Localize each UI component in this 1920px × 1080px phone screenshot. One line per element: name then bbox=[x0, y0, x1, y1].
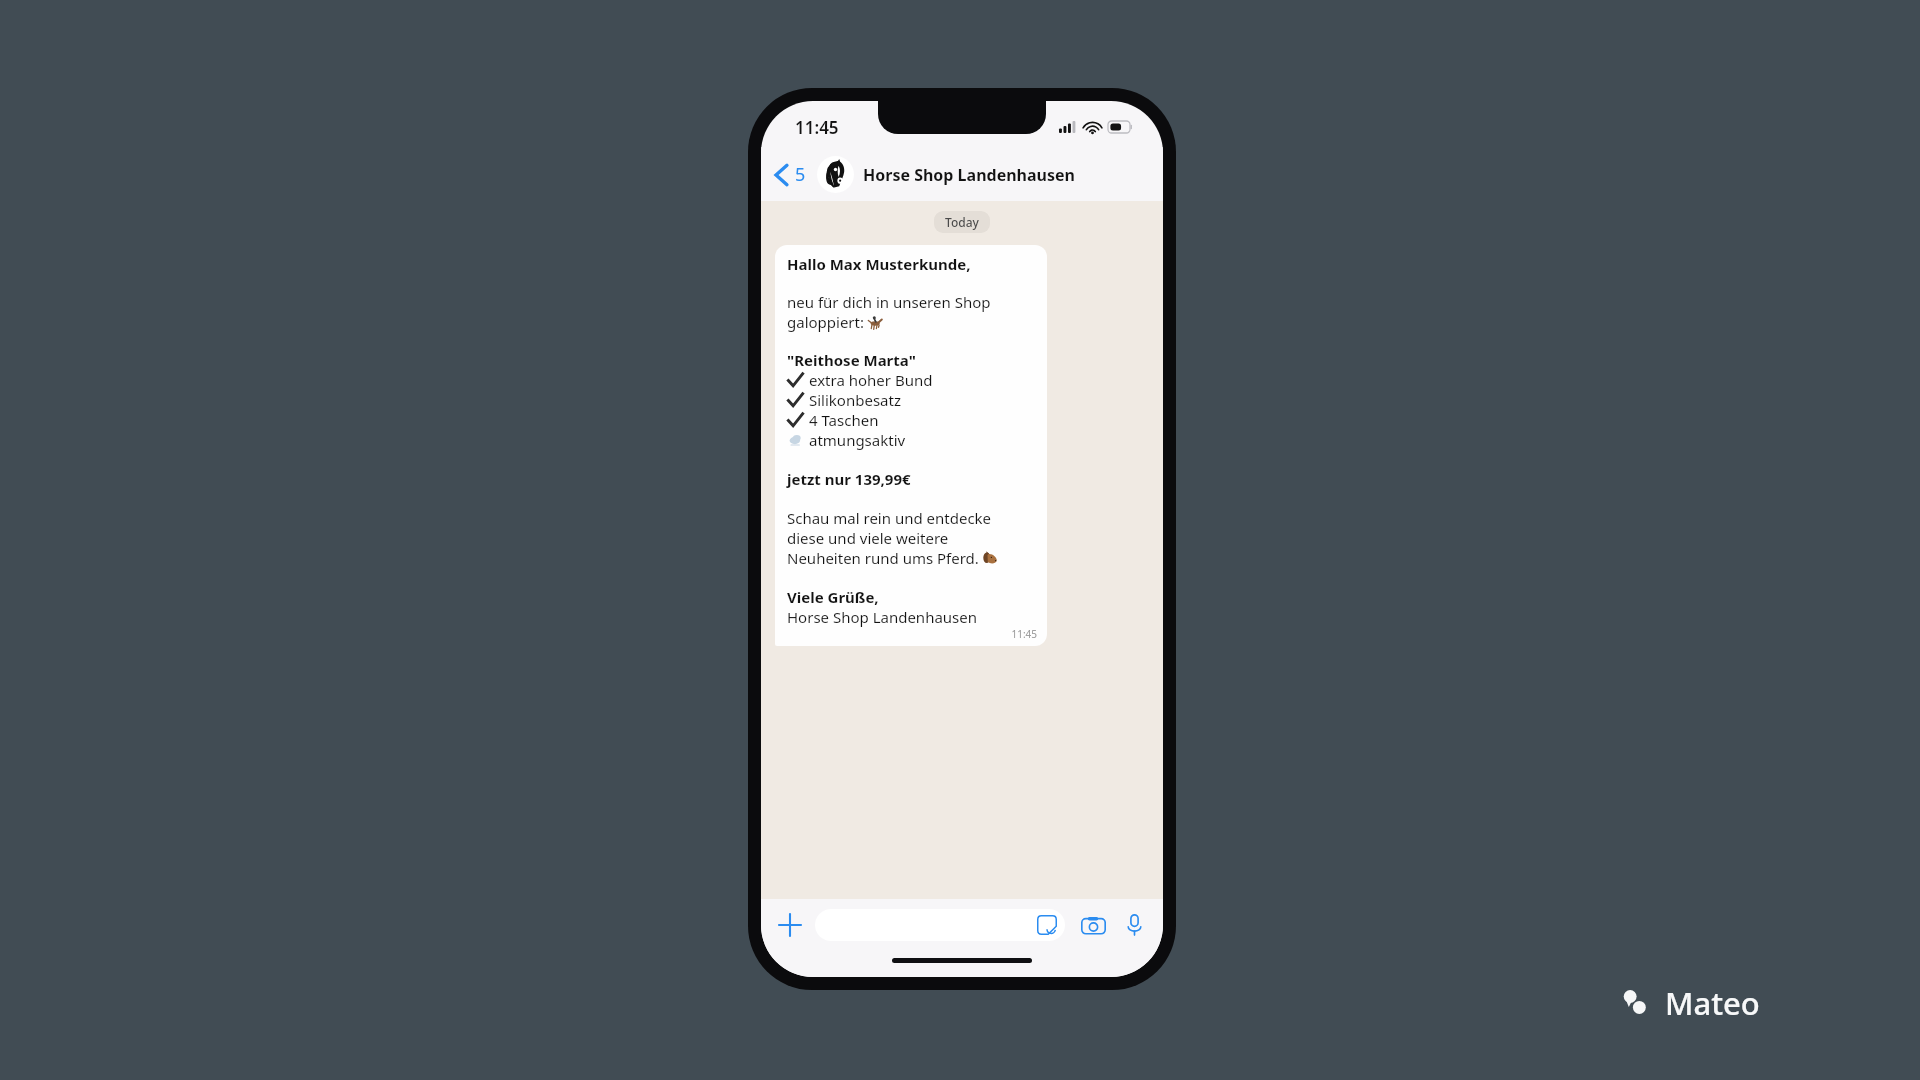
staticText: atmungsaktiv bbox=[809, 430, 906, 450]
staticText: Today bbox=[945, 214, 979, 230]
staticText: Horse Shop Landenhausen bbox=[863, 164, 1075, 186]
staticText: Silikonbesatz bbox=[809, 390, 901, 410]
staticText: 11:45 bbox=[787, 627, 1037, 641]
button[interactable] bbox=[815, 909, 1065, 941]
staticText: "Reithose Marta" bbox=[787, 350, 916, 370]
button[interactable]: Attach bbox=[775, 910, 805, 940]
staticText: diese und viele weitere bbox=[787, 528, 949, 548]
staticText: Mateo bbox=[1665, 982, 1760, 1024]
button[interactable]: Hallo Max Musterkunde, bbox=[775, 245, 1047, 646]
staticText: Horse Shop Landenhausen bbox=[787, 607, 978, 627]
button[interactable]: Camera bbox=[1077, 909, 1109, 941]
staticText: Neuheiten rund ums Pferd. bbox=[787, 548, 983, 568]
button[interactable]: Back, 5 unread bbox=[761, 156, 812, 193]
staticText: jetzt nur 139,99€ bbox=[787, 469, 911, 489]
staticText: Hallo Max Musterkunde, bbox=[787, 254, 971, 274]
staticText: Viele Grüße, bbox=[787, 587, 879, 607]
staticText: neu für dich in unseren Shop bbox=[787, 292, 991, 312]
staticText: Schau mal rein und entdecke bbox=[787, 508, 992, 528]
button[interactable]: Voice message bbox=[1119, 910, 1149, 940]
staticText: 5 bbox=[795, 162, 806, 187]
other: Mateo logo bbox=[1622, 986, 1656, 1020]
staticText: galoppiert: bbox=[787, 312, 868, 332]
button[interactable]: Mateo logo bbox=[1622, 982, 1760, 1024]
staticText: extra hoher Bund bbox=[809, 370, 933, 390]
button[interactable]: Horse Shop Landenhausen bbox=[817, 156, 1163, 193]
staticText: 11:45 bbox=[795, 116, 839, 139]
staticText: 4 Taschen bbox=[809, 410, 879, 430]
